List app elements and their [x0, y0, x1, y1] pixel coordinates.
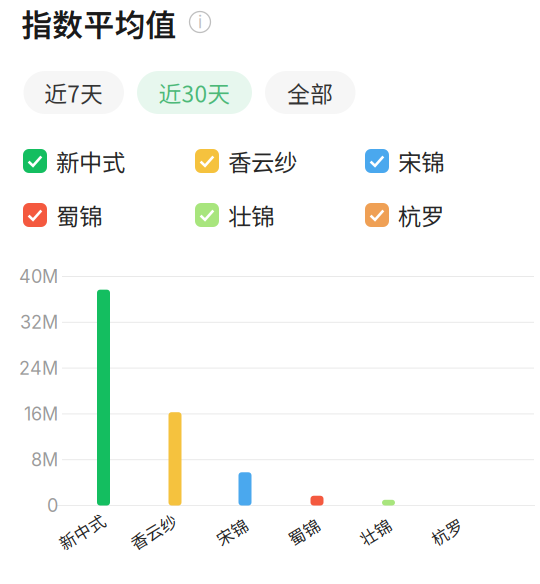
staticText: 宋锦	[215, 519, 249, 543]
button[interactable]: 香云纱	[195, 147, 345, 175]
staticText: 近30天	[158, 76, 230, 109]
staticText: 0	[47, 495, 58, 516]
staticText: 新中式	[56, 519, 107, 543]
staticText: 杭罗	[398, 198, 444, 232]
staticText: 香云纱	[128, 519, 179, 543]
staticText: 24M	[19, 357, 58, 379]
button[interactable]: 全部	[265, 71, 355, 114]
staticText: 新中式	[56, 144, 125, 178]
button[interactable]: 杭罗	[365, 201, 515, 229]
staticText: 40M	[19, 266, 58, 287]
staticText: 16M	[24, 403, 58, 425]
button[interactable]: Info	[186, 8, 214, 36]
staticText: 全部	[287, 76, 333, 109]
button[interactable]: 宋锦	[365, 147, 515, 175]
staticText: 指数平均值	[21, 1, 176, 45]
staticText: 蜀锦	[287, 519, 321, 543]
staticText: 香云纱	[228, 144, 297, 178]
staticText: 蜀锦	[56, 198, 102, 232]
staticText: 杭罗	[430, 519, 464, 543]
button[interactable]: 蜀锦	[23, 201, 173, 229]
staticText: 8M	[31, 449, 58, 471]
staticText: 壮锦	[358, 519, 392, 543]
staticText: 宋锦	[398, 144, 444, 178]
button[interactable]: 近30天	[137, 71, 252, 114]
staticText: 壮锦	[228, 198, 274, 232]
button[interactable]: 壮锦	[195, 201, 345, 229]
button[interactable]: 近7天	[23, 71, 124, 114]
staticText: 近7天	[44, 76, 103, 109]
staticText: i	[198, 11, 202, 32]
staticText: 32M	[20, 311, 58, 333]
button[interactable]: 新中式	[23, 147, 173, 175]
